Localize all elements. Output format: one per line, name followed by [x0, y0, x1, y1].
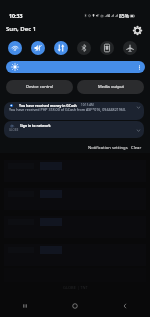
staticText: GLOBE | TNT	[63, 285, 88, 290]
staticText: 10:33	[9, 12, 23, 19]
staticText: Clear	[131, 145, 142, 151]
button[interactable]: Quick setting	[8, 41, 22, 55]
staticText: Sign in to network	[20, 123, 51, 128]
staticText: You have received money in GCash	[19, 103, 77, 108]
button[interactable]: You have received money in GCash	[4, 102, 144, 120]
button[interactable]: Quick setting	[123, 41, 137, 55]
button[interactable]: Sign in to network	[4, 121, 144, 138]
staticText: Device control	[26, 84, 54, 90]
staticText: Media output	[98, 84, 124, 90]
button[interactable]: Notification settings	[86, 143, 130, 153]
button[interactable]: Quick setting	[54, 41, 68, 55]
staticText: You have received PHP 318.00 of GCash fr…	[9, 107, 126, 112]
button[interactable]: Quick setting	[100, 41, 114, 55]
button[interactable]: Clear	[129, 143, 144, 153]
button[interactable]: Home	[50, 295, 100, 317]
button[interactable]: Device control	[6, 80, 73, 94]
staticText: Sun, Dec 1	[6, 24, 37, 32]
staticText: 10:15 AM	[81, 103, 94, 107]
staticText: 85%	[119, 13, 129, 18]
staticText: 4	[108, 14, 110, 18]
button[interactable]: Settings	[130, 23, 144, 37]
button[interactable]: Quick setting	[77, 41, 91, 55]
staticText: GLOBE	[9, 128, 19, 132]
staticText: Notification settings	[88, 145, 128, 151]
button[interactable]: Back	[100, 295, 150, 317]
button[interactable]: Recents	[0, 295, 50, 317]
button[interactable]: Media output	[77, 80, 144, 94]
button[interactable]: Brightness	[6, 61, 145, 73]
button[interactable]: Quick setting	[31, 41, 45, 55]
